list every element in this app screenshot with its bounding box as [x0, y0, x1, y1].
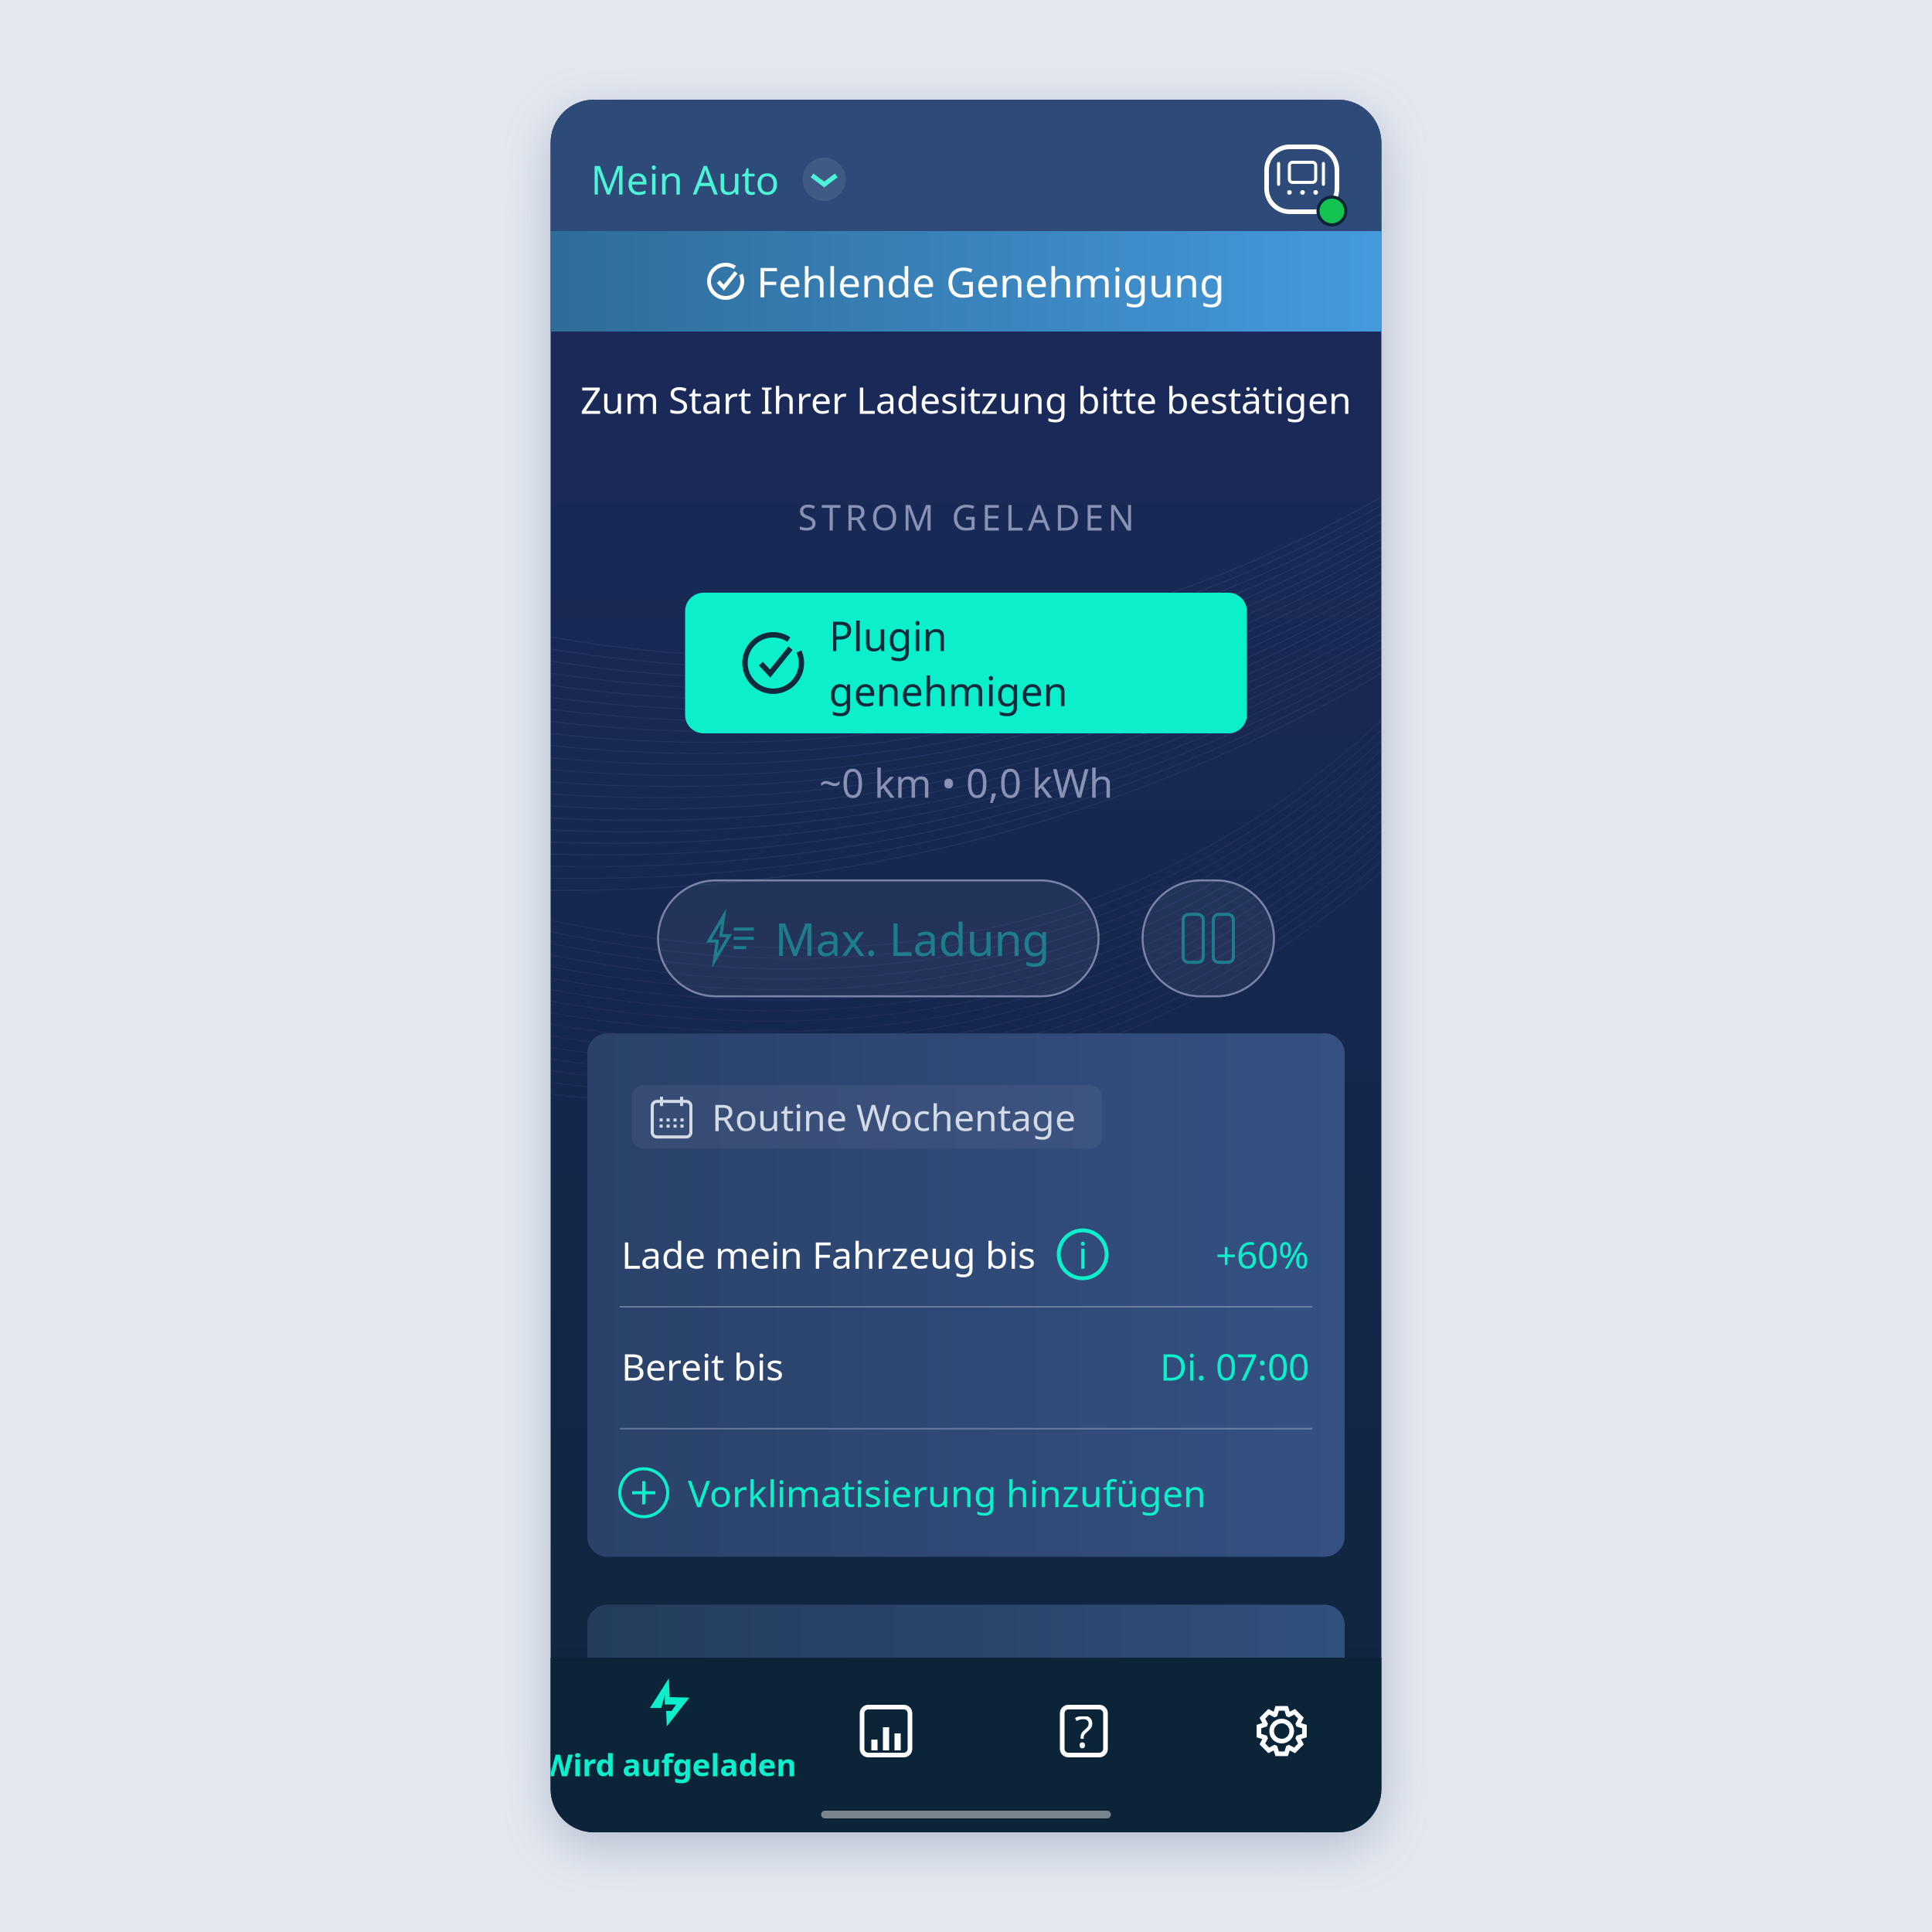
staticText: Wird aufgeladen: [543, 1744, 796, 1785]
staticText: i: [1078, 1230, 1087, 1279]
staticText: Di. 07:00: [1160, 1342, 1309, 1391]
button[interactable]: Einstellungen: [1255, 1704, 1309, 1758]
button[interactable]: Statistik: [858, 1703, 914, 1759]
staticText: Vorklimatisierung hinzufügen: [688, 1468, 1206, 1517]
button[interactable]: Mein Auto: [551, 100, 857, 231]
staticText: ~0 km • 0,0 kWh: [819, 756, 1113, 809]
button[interactable]: Pause: [1143, 880, 1274, 996]
button[interactable]: Ladestation: [1265, 100, 1381, 231]
staticText: Max. Ladung: [775, 908, 1050, 968]
staticText: genehmigen: [829, 664, 1068, 717]
staticText: Zum Start Ihrer Ladesitzung bitte bestät…: [580, 375, 1352, 424]
button[interactable]: Wird aufgeladen: [538, 1669, 801, 1793]
staticText: Bereit bis: [621, 1342, 784, 1391]
staticText: +60%: [1216, 1230, 1309, 1279]
button[interactable]: Hilfe: [1056, 1703, 1112, 1759]
button[interactable]: Info: [1036, 1230, 1114, 1278]
button[interactable]: Max. Ladung: [658, 880, 1099, 996]
staticText: Plugin: [829, 609, 947, 662]
button[interactable]: Plugin: [685, 593, 1247, 733]
staticText: Routine Wochentage: [712, 1092, 1076, 1142]
button[interactable]: Routine Wochentage: [631, 1085, 1102, 1149]
staticText: Lade mein Fahrzeug bis: [621, 1230, 1036, 1279]
staticText: Fehlende Genehmigung: [757, 254, 1225, 309]
button[interactable]: Vorklimatisierung hinzufügen: [587, 1468, 1206, 1517]
staticText: ?: [1075, 1702, 1093, 1760]
staticText: STROM GELADEN: [798, 494, 1134, 540]
staticText: Mein Auto: [591, 153, 779, 205]
